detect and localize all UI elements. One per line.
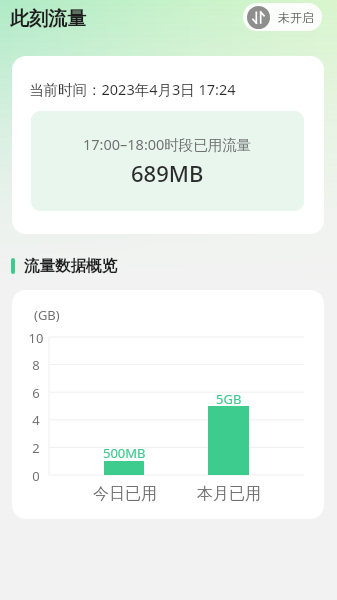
staticText: 2 bbox=[25, 439, 47, 457]
staticText: 689MB bbox=[131, 158, 204, 188]
staticText: 17:00–18:00时段已用流量 bbox=[83, 134, 252, 154]
staticText: 0 bbox=[25, 467, 47, 485]
staticText: 10 bbox=[25, 329, 47, 347]
other: Data usage status bbox=[247, 6, 270, 29]
button[interactable]: Data usage status bbox=[243, 3, 322, 31]
staticText: 当前时间：2023年4月3日 17:24 bbox=[29, 79, 236, 99]
staticText: 5GB bbox=[216, 390, 242, 408]
staticText: (GB) bbox=[34, 306, 60, 324]
staticText: 此刻流量 bbox=[10, 7, 86, 31]
staticText: 未开启 bbox=[278, 10, 314, 25]
staticText: 500MB bbox=[103, 444, 146, 462]
staticText: 8 bbox=[25, 356, 47, 374]
staticText: 6 bbox=[25, 384, 47, 402]
staticText: 流量数据概览 bbox=[24, 256, 117, 276]
staticText: 今日已用 bbox=[93, 484, 157, 504]
staticText: 4 bbox=[25, 411, 47, 429]
staticText: 本月已用 bbox=[197, 484, 261, 504]
